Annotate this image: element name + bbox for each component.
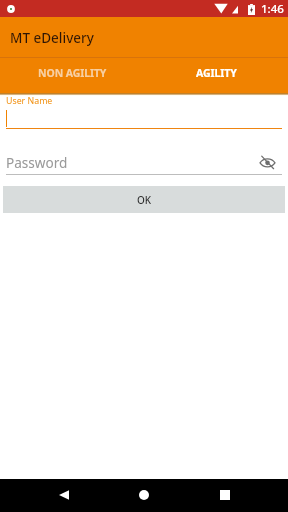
staticText: 1:46: [261, 1, 284, 17]
staticText: OK: [137, 193, 152, 207]
button[interactable]: Home: [120, 478, 168, 511]
staticText: User Name: [6, 95, 53, 107]
button[interactable]: Password: [6, 155, 282, 175]
button[interactable]: Recent apps: [201, 478, 249, 511]
staticText: MT eDelivery: [10, 29, 94, 47]
button[interactable]: User Name: [6, 96, 282, 129]
staticText: Password: [6, 153, 68, 172]
button[interactable]: Show password: [257, 152, 277, 172]
button[interactable]: AGILITY: [144, 58, 288, 93]
button[interactable]: NON AGILITY: [0, 58, 144, 93]
staticText: NON AGILITY: [38, 66, 107, 80]
staticText: AGILITY: [196, 66, 237, 80]
button[interactable]: OK: [3, 186, 285, 213]
button[interactable]: Back: [40, 478, 88, 511]
